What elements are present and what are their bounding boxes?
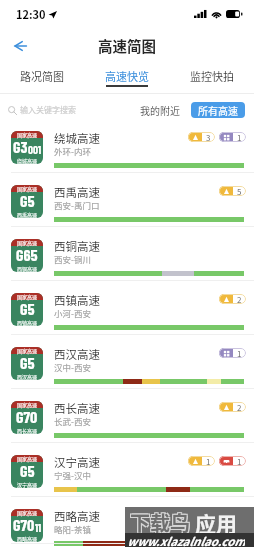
staticText: www.xlazalnlao.com: [127, 533, 245, 547]
staticText: 下载鸟: [131, 507, 191, 536]
staticText: 汉宁高速: [54, 454, 100, 471]
staticText: 2: [237, 294, 242, 304]
button[interactable]: 1: [188, 456, 215, 466]
staticText: 国家高速: [17, 401, 38, 408]
button[interactable]: 高速快览: [84, 61, 169, 94]
staticText: 西镇高速: [17, 319, 38, 326]
staticText: 西长高速: [54, 400, 100, 417]
staticText: 高速简图: [98, 35, 156, 56]
staticText: 2: [237, 402, 242, 412]
staticText: 西禹高速: [54, 184, 100, 201]
staticText: 应用: [195, 508, 237, 538]
staticText: G5: [20, 353, 35, 372]
staticText: 输入关键字搜索: [20, 104, 76, 116]
staticText: 5: [237, 186, 242, 196]
staticText: 路况简图: [20, 68, 64, 84]
staticText: 国家高速: [17, 509, 38, 516]
staticText: 西铜高速: [17, 265, 38, 272]
staticText: 小河-西安: [54, 307, 91, 319]
staticText: 西略高速: [54, 508, 100, 525]
staticText: 西铜高速: [54, 238, 100, 255]
staticText: 西禹高速: [17, 211, 38, 218]
button[interactable]: 3: [188, 132, 215, 142]
staticText: 西汉高速: [17, 373, 38, 380]
staticText: G70: [16, 407, 38, 426]
staticText: 001: [28, 143, 42, 156]
staticText: 长武-西安: [54, 415, 91, 427]
staticText: 国家高速: [17, 131, 38, 138]
button[interactable]: Back: [7, 33, 33, 59]
staticText: 西长高速: [17, 427, 38, 434]
button[interactable]: 5: [219, 186, 246, 196]
staticText: 绕城高速: [17, 157, 38, 164]
staticText: 西安-铜川: [54, 253, 91, 265]
staticText: 所有高速: [198, 103, 238, 117]
staticText: G3: [13, 137, 28, 156]
staticText: 下载鸟: [130, 508, 190, 537]
staticText: G70: [13, 515, 35, 534]
staticText: 国家高速: [17, 239, 38, 246]
staticText: 下载鸟: [131, 509, 191, 538]
staticText: 1: [206, 456, 211, 466]
button[interactable]: 所有高速: [191, 102, 245, 118]
staticText: 国家高速: [17, 347, 38, 354]
button[interactable]: 2: [219, 294, 246, 304]
staticText: 我的附近: [140, 103, 180, 117]
button[interactable]: 1: [219, 348, 246, 358]
staticText: 绕城高速: [54, 130, 100, 147]
button[interactable]: 国家高速: [0, 503, 254, 550]
staticText: 监控快拍: [190, 68, 234, 84]
staticText: 汉中-西安: [54, 361, 91, 373]
staticText: 11: [35, 521, 42, 534]
staticText: 下载鸟: [129, 509, 189, 538]
staticText: G5: [20, 461, 35, 480]
staticText: 国家高速: [17, 455, 38, 462]
button[interactable]: 2: [219, 402, 246, 412]
staticText: 12:30: [16, 6, 46, 22]
button[interactable]: 国家高速: [0, 233, 254, 287]
staticText: G5: [20, 299, 35, 318]
staticText: G5: [20, 191, 35, 210]
button[interactable]: 国家高速: [0, 395, 254, 449]
staticText: G65: [16, 245, 38, 264]
button[interactable]: 国家高速: [0, 449, 254, 503]
staticText: 西略高速: [17, 535, 38, 542]
staticText: 3: [206, 132, 211, 142]
staticText: 下载鸟: [129, 507, 189, 536]
staticText: 国家高速: [17, 293, 38, 300]
button[interactable]: 国家高速: [0, 341, 254, 395]
button[interactable]: 国家高速: [0, 125, 254, 179]
button[interactable]: 1: [219, 456, 246, 466]
staticText: 1: [237, 456, 242, 466]
staticText: 国家高速: [17, 185, 38, 192]
button[interactable]: 监控快拍: [169, 61, 254, 94]
button[interactable]: 1: [219, 132, 246, 142]
staticText: 1: [237, 348, 242, 358]
staticText: 汉宁高速: [17, 481, 38, 488]
staticText: 高速快览: [105, 68, 149, 84]
staticText: 西安-禹门口: [54, 199, 100, 211]
staticText: 西镇高速: [54, 292, 100, 309]
staticText: 略阳-茶镇: [54, 523, 91, 535]
button[interactable]: 路况简图: [0, 61, 84, 94]
button[interactable]: 输入关键字搜索: [8, 104, 76, 116]
staticText: 1: [237, 132, 242, 142]
button[interactable]: 国家高速: [0, 287, 254, 341]
staticText: 宁强-汉中: [54, 469, 91, 481]
button[interactable]: 国家高速: [0, 179, 254, 233]
staticText: 外环-内环: [54, 145, 91, 157]
button[interactable]: 我的附近: [136, 100, 184, 120]
staticText: 西汉高速: [54, 346, 100, 363]
